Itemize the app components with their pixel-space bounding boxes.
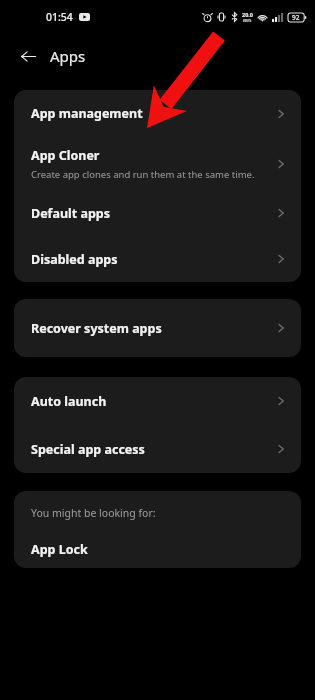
staticText: App Cloner: [31, 147, 100, 164]
staticText: Auto launch: [31, 393, 107, 410]
button[interactable]: Auto launch: [14, 377, 301, 425]
staticText: Default apps: [31, 205, 111, 222]
staticText: KB/S: [243, 18, 252, 23]
button[interactable]: App Lock: [14, 536, 301, 562]
button[interactable]: Default apps: [14, 190, 301, 236]
button[interactable]: App management: [14, 90, 301, 137]
button[interactable]: App Cloner: [14, 137, 301, 190]
staticText: You might be looking for:: [31, 506, 156, 520]
staticText: 20.0: [242, 11, 253, 18]
staticText: 92: [292, 13, 300, 22]
staticText: Create app clones and run them at the sa…: [31, 168, 255, 181]
staticText: App Lock: [31, 541, 88, 558]
button[interactable]: Special app access: [14, 425, 301, 473]
staticText: Disabled apps: [31, 251, 118, 268]
staticText: App management: [31, 105, 143, 122]
staticText: Apps: [50, 46, 86, 66]
button[interactable]: Disabled apps: [14, 236, 301, 282]
staticText: 01:54: [46, 10, 73, 24]
staticText: Special app access: [31, 441, 145, 458]
button[interactable]: Recover system apps: [14, 299, 301, 357]
staticText: Recover system apps: [31, 320, 162, 337]
button[interactable]: Back: [10, 38, 46, 74]
